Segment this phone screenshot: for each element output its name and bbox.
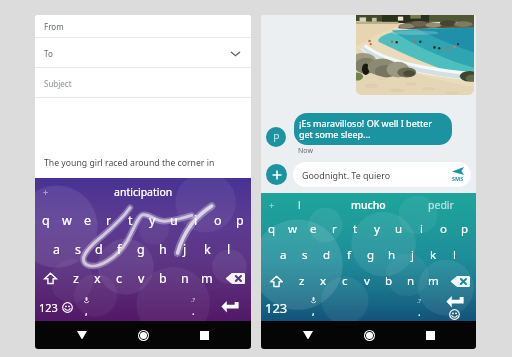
button[interactable]: e <box>303 216 324 242</box>
button[interactable]: o <box>432 216 454 242</box>
button[interactable]: 123 <box>35 293 75 321</box>
staticText: i <box>420 221 423 237</box>
button[interactable]: t <box>119 206 141 235</box>
staticText: a <box>53 241 61 258</box>
button[interactable]: n <box>400 268 422 294</box>
staticText: d <box>95 241 103 258</box>
button[interactable]: q <box>261 216 282 242</box>
button[interactable]: m <box>196 264 218 293</box>
button[interactable]: Goodnight. Te quiero <box>293 162 471 187</box>
staticText: v <box>138 270 145 287</box>
button[interactable]: Back <box>67 321 97 349</box>
button[interactable]: y <box>141 206 163 235</box>
button[interactable]: P <box>266 127 286 147</box>
button[interactable]: v <box>356 268 378 294</box>
staticText: + <box>43 186 49 198</box>
button[interactable]: t <box>345 216 366 242</box>
button[interactable]: Home <box>128 321 158 349</box>
staticText: .? <box>417 297 422 305</box>
button[interactable]: From <box>35 15 251 38</box>
button[interactable]: b <box>378 268 400 294</box>
staticText: y <box>374 221 380 237</box>
button[interactable]: d <box>316 242 338 268</box>
button[interactable]: r <box>98 206 119 235</box>
button[interactable]: a <box>272 242 294 268</box>
button[interactable]: i <box>410 216 432 242</box>
button[interactable]: h <box>152 235 174 264</box>
button[interactable]: Home <box>354 321 384 349</box>
button[interactable]: j <box>174 235 196 264</box>
button[interactable]: Space <box>97 293 179 321</box>
staticText: P <box>273 130 280 145</box>
button[interactable]: Add attachment <box>266 164 287 185</box>
button[interactable]: u <box>388 216 410 242</box>
button[interactable]: Shift <box>261 268 291 294</box>
button[interactable]: h <box>381 242 402 268</box>
staticText: Goodnight. Te quiero <box>302 169 391 181</box>
button[interactable]: s <box>294 242 316 268</box>
button[interactable]: m <box>422 268 444 294</box>
staticText: j <box>411 247 414 263</box>
button[interactable]: p <box>229 206 251 235</box>
button[interactable]: l <box>444 242 465 268</box>
button[interactable]: Shift <box>35 264 65 293</box>
button[interactable] <box>356 15 474 95</box>
button[interactable]: v <box>130 264 152 293</box>
button[interactable]: Enter <box>446 296 464 308</box>
button[interactable]: f <box>338 242 360 268</box>
button[interactable]: Period <box>405 294 433 321</box>
staticText: m <box>201 270 213 287</box>
button[interactable]: Voice and comma <box>302 294 324 321</box>
button[interactable]: d <box>88 235 109 264</box>
button[interactable]: ¡Es maravilloso! OK well I better get so… <box>294 113 452 145</box>
button[interactable]: s <box>67 235 88 264</box>
button[interactable]: a <box>46 235 67 264</box>
button[interactable]: x <box>86 264 108 293</box>
button[interactable]: e <box>77 206 98 235</box>
staticText: n <box>181 270 189 287</box>
button[interactable]: g <box>360 242 381 268</box>
staticText: q <box>268 221 276 237</box>
button[interactable]: k <box>423 242 444 268</box>
button[interactable]: u <box>163 206 185 235</box>
staticText: m <box>428 273 439 289</box>
button[interactable]: w <box>282 216 303 242</box>
button[interactable]: To <box>35 38 251 68</box>
button[interactable]: Voice and comma <box>75 293 97 321</box>
button[interactable]: f <box>109 235 130 264</box>
button[interactable]: p <box>454 216 476 242</box>
button[interactable]: y <box>366 216 388 242</box>
button[interactable]: Delete <box>444 268 476 294</box>
button[interactable]: n <box>174 264 196 293</box>
button[interactable]: Recents <box>415 321 445 349</box>
button[interactable]: Back <box>293 321 323 349</box>
button[interactable]: j <box>402 242 423 268</box>
button[interactable]: Recents <box>189 321 219 349</box>
button[interactable]: Period <box>179 293 208 321</box>
button[interactable]: b <box>152 264 174 293</box>
button[interactable]: k <box>196 235 218 264</box>
button[interactable]: Subject <box>35 68 251 98</box>
staticText: w <box>288 221 298 237</box>
button[interactable]: w <box>56 206 77 235</box>
button[interactable]: Emoji <box>449 309 460 320</box>
button[interactable]: c <box>108 264 130 293</box>
button[interactable]: l <box>218 235 240 264</box>
staticText: .? <box>191 296 196 304</box>
button[interactable]: 123 <box>261 294 302 321</box>
staticText: i <box>194 212 198 229</box>
button[interactable]: z <box>291 268 312 294</box>
staticText: h <box>388 247 396 263</box>
staticText: f <box>347 247 351 263</box>
button[interactable]: i <box>185 206 207 235</box>
button[interactable]: g <box>130 235 152 264</box>
button[interactable]: o <box>207 206 229 235</box>
button[interactable]: r <box>324 216 345 242</box>
button[interactable]: z <box>65 264 86 293</box>
button[interactable]: q <box>35 206 56 235</box>
button[interactable]: c <box>334 268 356 294</box>
button[interactable]: Space <box>324 294 405 321</box>
button[interactable]: Enter <box>208 293 251 321</box>
button[interactable]: x <box>312 268 334 294</box>
button[interactable]: Delete <box>218 264 251 293</box>
